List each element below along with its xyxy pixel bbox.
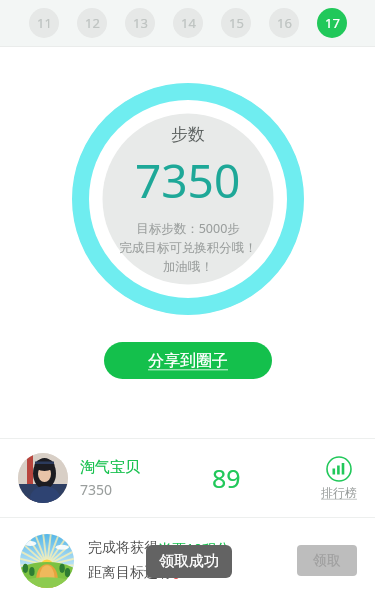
staticText: 17 bbox=[325, 14, 340, 32]
staticText: 完成将获得 bbox=[88, 539, 158, 557]
button[interactable]: 14 bbox=[173, 8, 203, 38]
staticText: 淘气宝贝 bbox=[80, 458, 140, 477]
staticText: 领取 bbox=[313, 552, 341, 570]
staticText: 16 bbox=[277, 14, 292, 32]
staticText: 0 bbox=[172, 564, 181, 583]
staticText: 11 bbox=[37, 14, 52, 32]
staticText: 13 bbox=[133, 14, 148, 32]
button[interactable]: 13 bbox=[125, 8, 155, 38]
staticText: 排行榜 bbox=[321, 485, 357, 500]
staticText: 完成目标可兑换积分哦！ bbox=[119, 240, 257, 256]
staticText: 89 bbox=[212, 461, 241, 495]
button[interactable]: 排行榜 bbox=[321, 456, 357, 500]
button[interactable]: 淘气宝贝 bbox=[0, 439, 375, 517]
staticText: 距离目标还有 bbox=[88, 564, 172, 582]
button[interactable]: 15 bbox=[221, 8, 251, 38]
staticText: 步数 bbox=[171, 124, 205, 145]
button[interactable]: 分享到圈子 bbox=[104, 342, 272, 379]
staticText: 加油哦！ bbox=[163, 259, 213, 275]
button[interactable]: 17 bbox=[317, 8, 347, 38]
staticText: 7350 bbox=[135, 149, 241, 212]
staticText: 半票10积分 bbox=[158, 539, 231, 558]
button[interactable]: 16 bbox=[269, 8, 299, 38]
staticText: 7350 bbox=[80, 480, 113, 499]
staticText: 15 bbox=[229, 14, 244, 32]
button[interactable]: 领取 bbox=[297, 545, 357, 576]
button[interactable]: 11 bbox=[29, 8, 59, 38]
staticText: 分享到圈子 bbox=[148, 351, 228, 371]
staticText: 目标步数：5000步 bbox=[136, 220, 240, 237]
staticText: 14 bbox=[181, 14, 196, 32]
button[interactable]: 12 bbox=[77, 8, 107, 38]
staticText: 领取成功 bbox=[159, 552, 219, 571]
staticText: 12 bbox=[85, 14, 100, 32]
